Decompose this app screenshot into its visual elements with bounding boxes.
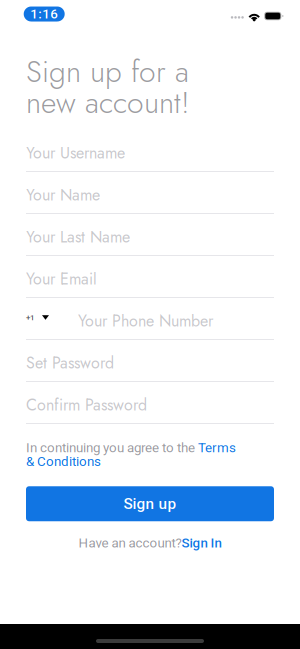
- button[interactable]: Set Password: [26, 340, 274, 382]
- button[interactable]: & Conditions: [26, 454, 101, 469]
- button[interactable]: Your Last Name: [26, 214, 274, 256]
- staticText: Sign up for a: [26, 50, 189, 93]
- staticText: Your Phone Number: [78, 309, 213, 332]
- staticText: In continuing you agree to the: [26, 440, 198, 456]
- staticText: & Conditions: [26, 454, 101, 469]
- staticText: new account!: [26, 81, 190, 124]
- button[interactable]: Confirm Password: [26, 382, 274, 424]
- staticText: 1:16: [30, 6, 58, 22]
- staticText: Your Username: [26, 141, 125, 164]
- staticText: Terms: [198, 440, 236, 456]
- staticText: Sign up: [123, 495, 176, 513]
- button[interactable]: Sign In: [181, 535, 221, 551]
- staticText: Confirm Password: [26, 393, 147, 416]
- button[interactable]: +1: [26, 298, 274, 340]
- staticText: Sign In: [181, 535, 221, 551]
- staticText: Set Password: [26, 351, 114, 374]
- button[interactable]: Your Username: [26, 130, 274, 172]
- button[interactable]: Terms: [198, 440, 236, 456]
- button[interactable]: Your Name: [26, 172, 274, 214]
- staticText: Your Last Name: [26, 225, 130, 248]
- staticText: Have an account?: [78, 535, 181, 551]
- button[interactable]: Your Email: [26, 256, 274, 298]
- staticText: Your Email: [26, 267, 97, 290]
- button[interactable]: Sign up: [26, 486, 274, 521]
- staticText: Your Name: [26, 183, 100, 206]
- staticText: +1: [26, 313, 35, 322]
